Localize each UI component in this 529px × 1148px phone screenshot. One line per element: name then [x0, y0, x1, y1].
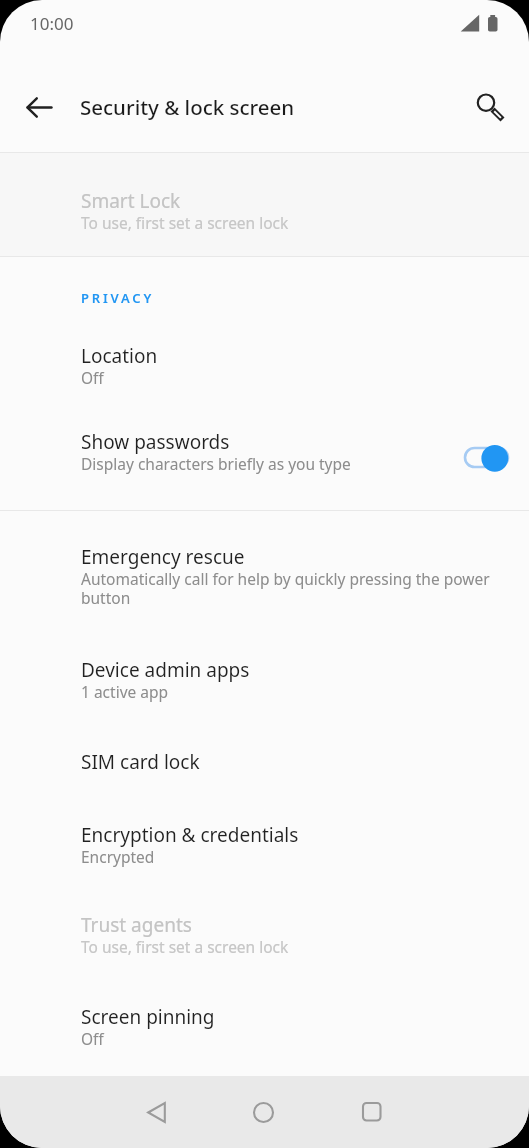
staticText: Device admin apps [81, 657, 250, 683]
staticText: Location [81, 343, 158, 369]
staticText: SIM card lock [81, 749, 200, 775]
staticText: Show passwords [81, 429, 230, 455]
button[interactable]: Emergency rescue [0, 527, 529, 631]
staticText: Trust agents [81, 912, 192, 938]
staticText: 1 active app [81, 681, 169, 702]
button[interactable]: Device admin apps [0, 631, 529, 724]
staticText: Encrypted [81, 846, 155, 867]
staticText: Screen pinning [81, 1004, 215, 1030]
button[interactable]: Smart Lock [0, 153, 529, 256]
staticText: Encryption & credentials [81, 822, 299, 848]
staticText: Off [81, 1028, 104, 1049]
staticText: 10:00 [30, 12, 74, 35]
button[interactable]: Location [0, 320, 529, 402]
button[interactable] [237, 1085, 291, 1139]
staticText: Automatically call for help by quickly p… [81, 568, 503, 609]
staticText: Off [81, 367, 104, 388]
staticText: Security & lock screen [80, 93, 295, 121]
button[interactable] [129, 1085, 183, 1139]
staticText: PRIVACY [81, 289, 155, 307]
button[interactable]: Encryption & credentials [0, 790, 529, 886]
staticText: To use, first set a screen lock [81, 212, 289, 233]
button[interactable]: Screen pinning [0, 977, 529, 1070]
button[interactable]: SIM card lock [0, 724, 529, 790]
staticText: Smart Lock [81, 188, 181, 214]
button[interactable] [462, 79, 510, 127]
staticText: Display characters briefly as you type [81, 453, 351, 474]
button[interactable] [14, 83, 62, 131]
staticText: To use, first set a screen lock [81, 936, 289, 957]
staticText: Emergency rescue [81, 544, 245, 570]
button[interactable]: Show passwords [0, 402, 529, 488]
button[interactable] [345, 1085, 399, 1139]
button[interactable]: Trust agents [0, 886, 529, 977]
